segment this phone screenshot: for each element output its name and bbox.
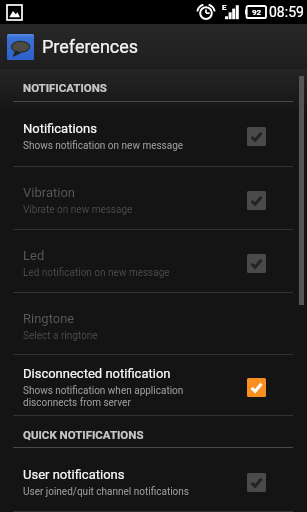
button[interactable]: Disconnected notification [0, 355, 307, 416]
staticText: disconnects from server [23, 397, 131, 409]
staticText: 92 [252, 8, 262, 17]
staticText: QUICK NOTIFICATIONS [23, 428, 144, 441]
staticText: Disconnected notification [23, 366, 171, 381]
staticText: Vibrate on new message [23, 204, 133, 216]
other: Battery 92 percent [245, 6, 266, 18]
button[interactable]: Preferences [0, 24, 307, 69]
staticText: Shows notification when application [23, 385, 184, 397]
staticText: Preferences [42, 36, 139, 57]
button[interactable]: Notifications [0, 102, 307, 167]
staticText: User notifications [23, 467, 125, 482]
button[interactable]: Toggle setting [247, 378, 266, 397]
button[interactable]: Vibration [0, 167, 307, 230]
button[interactable]: User notifications [0, 448, 307, 512]
staticText: Vibration [23, 185, 75, 200]
staticText: 08:59 [269, 4, 304, 20]
button[interactable]: Led [0, 230, 307, 293]
button[interactable]: Toggle setting [247, 191, 266, 210]
staticText: Ringtone [23, 311, 75, 326]
staticText: Notifications [23, 121, 97, 136]
other: Signal strength [225, 4, 240, 19]
other: Alarm set [198, 4, 214, 20]
staticText: E [222, 3, 227, 12]
staticText: Led [23, 248, 45, 263]
button[interactable]: Toggle setting [247, 127, 266, 146]
staticText: Shows notification on new message [23, 140, 184, 152]
other: Screenshot captured [7, 5, 22, 20]
staticText: Led notification on new message [23, 267, 170, 279]
button[interactable]: Ringtone [0, 293, 307, 355]
button[interactable]: Toggle setting [247, 473, 266, 492]
staticText: NOTIFICATIONS [23, 81, 107, 94]
staticText: User joined/quit channel notifications [23, 486, 189, 498]
button[interactable]: Toggle setting [247, 254, 266, 273]
staticText: Select a ringtone [23, 330, 98, 342]
